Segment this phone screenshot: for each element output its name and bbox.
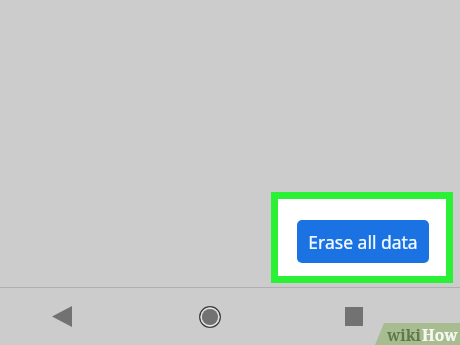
staticText: How [422,324,458,345]
button[interactable]: Home [168,288,252,345]
button[interactable]: Recent apps [312,288,396,345]
staticText: Erase all data [308,230,418,254]
button[interactable]: Erase all data [297,220,429,263]
staticText: wiki [387,324,422,345]
button[interactable]: Back [20,288,104,345]
